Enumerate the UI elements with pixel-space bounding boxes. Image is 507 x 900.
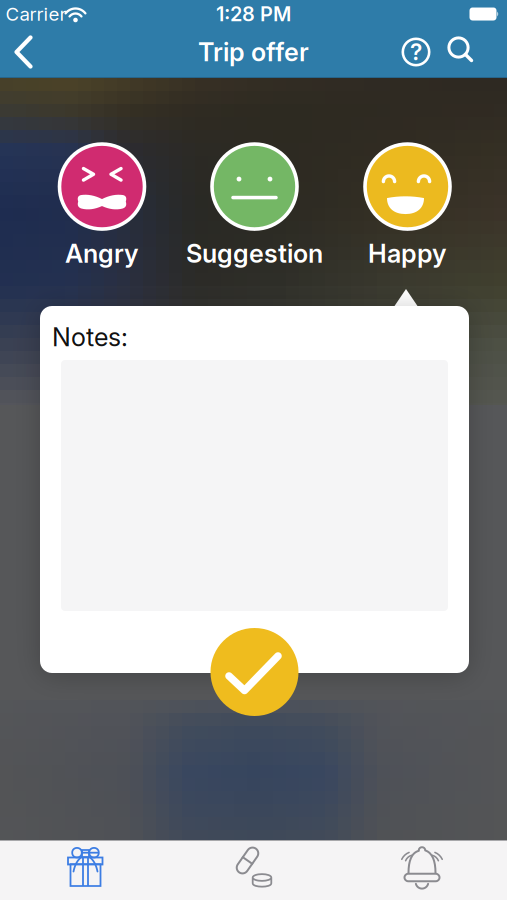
button[interactable]: Gifts — [45, 843, 125, 893]
button[interactable]: Back — [10, 32, 50, 72]
staticText: Happy — [368, 239, 447, 268]
button[interactable]: Angry — [57, 144, 147, 268]
staticText: 1:28 PM — [216, 2, 291, 26]
button[interactable]: Notifications — [382, 843, 462, 893]
staticText: Trip offer — [198, 37, 309, 67]
staticText: Notes: — [52, 322, 128, 352]
button[interactable]: Search — [444, 34, 480, 70]
button[interactable]: Medications — [213, 843, 293, 893]
staticText: Carrier — [5, 3, 66, 25]
staticText: Angry — [65, 239, 139, 268]
button[interactable]: Suggestion — [186, 144, 323, 268]
staticText: Suggestion — [186, 239, 323, 268]
staticText: ? — [410, 39, 422, 65]
button[interactable]: Happy — [362, 144, 452, 268]
button[interactable]: Confirm — [210, 628, 298, 716]
button[interactable]: Help — [398, 34, 434, 70]
